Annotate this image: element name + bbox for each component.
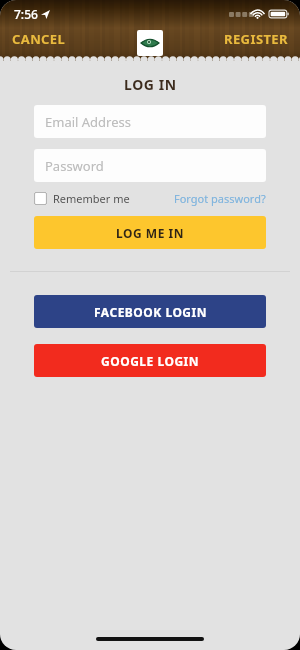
button[interactable]: Remember me [34,191,130,206]
staticText: Forgot password? [174,191,266,206]
staticText: LOG ME IN [116,225,184,241]
staticText: 7:56 [14,6,38,22]
button[interactable]: GOOGLE LOGIN [34,344,266,377]
staticText: Remember me [53,191,130,206]
button[interactable]: Home logo [137,30,163,56]
button[interactable]: Forgot password? [174,191,266,206]
staticText: Password [45,157,104,175]
button[interactable]: Password [34,149,266,182]
button[interactable]: Email Address [34,105,266,138]
staticText: LOG IN [124,75,177,94]
staticText: GOOGLE LOGIN [101,353,199,369]
button[interactable]: FACEBOOK LOGIN [34,295,266,328]
staticText: Email Address [45,113,131,131]
button[interactable]: CANCEL [0,30,137,48]
staticText: FACEBOOK LOGIN [94,304,207,320]
staticText: REGISTER [224,30,288,48]
button[interactable]: LOG ME IN [34,216,266,249]
button[interactable]: REGISTER [163,30,300,48]
staticText: CANCEL [12,30,66,48]
